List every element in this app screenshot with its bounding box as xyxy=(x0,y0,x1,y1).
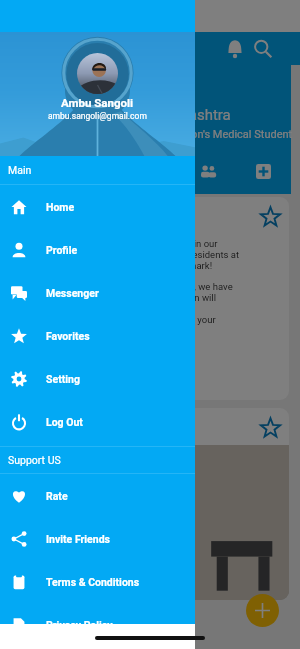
button[interactable]: Invite Friends xyxy=(0,517,195,560)
staticText: Support US xyxy=(8,454,61,466)
staticText: Medical Students Network Association's M… xyxy=(14,128,293,141)
button[interactable]: Setting xyxy=(0,357,195,400)
staticText: the receiving end definitely did make a … xyxy=(25,260,213,271)
button[interactable]: Friends xyxy=(195,158,222,185)
staticText: been able to reach the number I'm certai… xyxy=(25,292,216,303)
staticText: Going by the number of reports received,… xyxy=(25,281,233,292)
staticText: Main xyxy=(8,164,32,176)
button[interactable]: Messages xyxy=(85,158,112,185)
button[interactable]: Privacy Policy xyxy=(0,603,195,646)
staticText: Ambu Sangoli xyxy=(61,96,134,109)
button[interactable]: Medical xyxy=(250,158,277,185)
button[interactable]: Messenger xyxy=(0,271,195,314)
button[interactable]: Terms & Conditions xyxy=(0,560,195,603)
button[interactable]: Notifications xyxy=(224,38,246,60)
button[interactable]: Posts xyxy=(30,158,57,185)
button[interactable]: Favorites xyxy=(0,314,195,357)
staticText: Profile xyxy=(46,244,78,256)
staticText: Dear friends, thank you for participatin… xyxy=(25,238,218,249)
button[interactable]: Favorite xyxy=(251,197,289,235)
staticText: Terms & Conditions xyxy=(46,576,140,588)
staticText: recent survey. The number of SMI and Res… xyxy=(25,249,240,260)
staticText: Ambu Sangoli from Maharashtra xyxy=(14,106,231,124)
button[interactable]: Events xyxy=(140,158,167,185)
staticText: Privacy Policy xyxy=(46,619,113,631)
staticText: colleagues of ours that were not eligibl… xyxy=(25,314,216,325)
staticText: Setting xyxy=(46,373,80,385)
button[interactable]: Search xyxy=(252,38,274,60)
staticText: ambu.sangoli@gmail.com xyxy=(48,111,147,121)
button[interactable]: Rate xyxy=(0,474,195,517)
staticText: Invite Friends xyxy=(46,533,111,545)
staticText: Log Out xyxy=(46,416,83,428)
button[interactable]: Profile xyxy=(0,228,195,271)
button[interactable]: Home xyxy=(0,185,195,228)
staticText: Favorites xyxy=(46,330,90,342)
staticText: Messenger xyxy=(46,287,99,299)
staticText: Rate xyxy=(46,490,68,502)
button[interactable]: Add post xyxy=(246,594,279,627)
button[interactable]: Log Out xyxy=(0,400,195,443)
button[interactable]: Favorite xyxy=(251,408,289,446)
staticText: Home xyxy=(46,201,75,213)
